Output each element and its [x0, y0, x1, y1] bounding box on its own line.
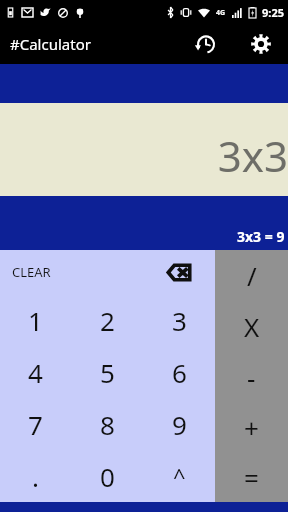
button[interactable]: 8	[71, 398, 143, 450]
staticText: X	[244, 309, 260, 344]
button[interactable]: Settings	[244, 27, 278, 61]
staticText: CLEAR	[12, 263, 51, 281]
staticText: 1	[28, 303, 43, 338]
button[interactable]: ^	[143, 450, 215, 502]
staticText: 7	[28, 407, 43, 442]
staticText: 4	[28, 355, 43, 390]
staticText: 4G	[216, 8, 226, 18]
staticText: 3x3	[217, 127, 288, 184]
button[interactable]: X	[215, 301, 288, 352]
staticText: /	[247, 258, 257, 293]
button[interactable]: History	[188, 27, 222, 61]
staticText: =	[244, 460, 259, 495]
staticText: 6	[172, 355, 187, 390]
button[interactable]: 4	[0, 346, 71, 398]
staticText: #Calculator	[10, 34, 91, 54]
button[interactable]: CLEAR	[0, 250, 143, 294]
button[interactable]: -	[215, 352, 288, 402]
staticText: 9	[172, 407, 187, 442]
staticText: 0	[100, 459, 115, 494]
staticText: +	[244, 410, 259, 445]
button[interactable]: =	[215, 452, 288, 502]
staticText: 5	[100, 355, 115, 390]
button[interactable]: 2	[71, 294, 143, 346]
staticText: .	[32, 459, 39, 494]
button[interactable]: /	[215, 250, 288, 301]
staticText: 3x3 = 9	[237, 227, 285, 246]
staticText: -	[247, 360, 256, 395]
button[interactable]: 7	[0, 398, 71, 450]
button[interactable]: 9	[143, 398, 215, 450]
button[interactable]: 6	[143, 346, 215, 398]
button[interactable]: +	[215, 402, 288, 452]
button[interactable]: Backspace	[143, 250, 215, 294]
button[interactable]: 3	[143, 294, 215, 346]
button[interactable]: 5	[71, 346, 143, 398]
button[interactable]: .	[0, 450, 71, 502]
button[interactable]: 1	[0, 294, 71, 346]
button[interactable]: 0	[71, 450, 143, 502]
staticText: ^	[173, 461, 186, 491]
staticText: 8	[100, 407, 115, 442]
staticText: 2	[100, 303, 115, 338]
staticText: 3	[172, 303, 187, 338]
staticText: 9:25	[262, 5, 284, 20]
